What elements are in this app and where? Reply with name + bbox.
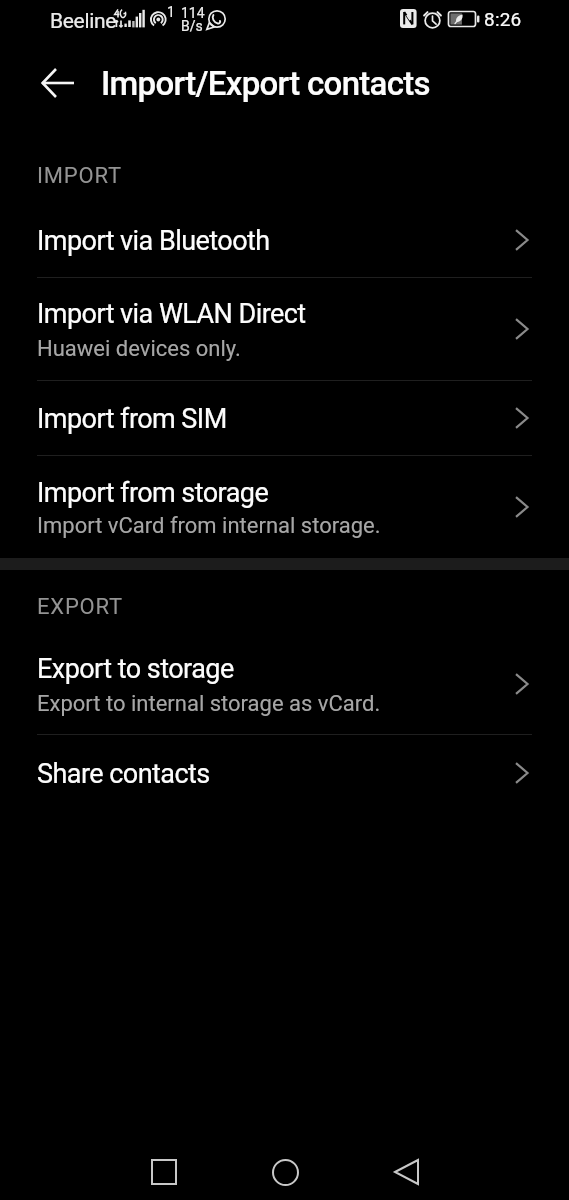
staticText: Export to internal storage as vCard. (37, 691, 381, 717)
button[interactable]: Import from SIM (0, 381, 569, 454)
staticText: Huawei devices only. (37, 336, 241, 362)
staticText: Import via Bluetooth (37, 225, 270, 257)
staticText: 114 (181, 5, 205, 21)
button[interactable]: Export to storage (0, 633, 569, 734)
staticText: Import via WLAN Direct (37, 298, 306, 330)
button[interactable]: Back (32, 57, 84, 109)
button[interactable]: Import via WLAN Direct (0, 278, 569, 379)
button[interactable]: Share contacts (0, 735, 569, 808)
button[interactable]: Recent apps (129, 1142, 199, 1200)
staticText: IMPORT (37, 163, 122, 189)
staticText: EXPORT (37, 594, 123, 620)
staticText: Beeline (50, 9, 117, 34)
button[interactable]: Back (371, 1142, 441, 1200)
staticText: 8:26 (484, 8, 522, 30)
button[interactable]: Import via Bluetooth (0, 206, 569, 277)
button[interactable]: Home (250, 1142, 320, 1200)
button[interactable]: Import from storage (0, 456, 569, 557)
staticText: 1 (167, 4, 175, 20)
staticText: Import from storage (37, 477, 269, 509)
staticText: Export to storage (37, 653, 234, 685)
staticText: B/s (181, 18, 203, 34)
staticText: Import/Export contacts (101, 64, 430, 103)
staticText: Share contacts (37, 758, 210, 790)
staticText: Import from SIM (37, 403, 227, 435)
staticText: Import vCard from internal storage. (37, 513, 381, 539)
